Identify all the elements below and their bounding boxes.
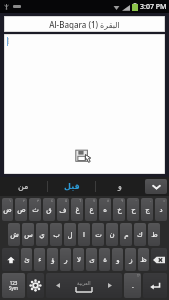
- button[interactable]: ٦: [71, 198, 83, 221]
- button[interactable]: =: [155, 198, 167, 221]
- button[interactable]: Enter: [143, 273, 167, 298]
- button[interactable]: Backspace: [151, 248, 167, 271]
- button[interactable]: !?: [124, 273, 141, 298]
- staticText: قيل: [64, 182, 80, 191]
- staticText: !?: [137, 273, 140, 278]
- staticText: -: [150, 198, 152, 203]
- button[interactable]: ٣: [29, 198, 41, 221]
- staticText: ة: [103, 256, 107, 264]
- button[interactable]: Al-Baqara (1) البقرة: [4, 16, 165, 32]
- staticText: 3:07 PM: [140, 2, 167, 12]
- staticText: ن: [109, 231, 115, 239]
- button[interactable]: لا: [73, 248, 84, 271]
- staticText: ع: [89, 206, 94, 214]
- staticText: ر: [64, 256, 68, 264]
- button[interactable]: ٤: [43, 198, 55, 221]
- staticText: لا: [77, 256, 81, 264]
- button[interactable]: ؤ: [47, 248, 58, 271]
- staticText: ض: [3, 206, 12, 214]
- staticText: ك: [137, 231, 143, 239]
- button[interactable]: و: [96, 177, 143, 196]
- button[interactable]: ى: [86, 248, 97, 271]
- button[interactable]: ٥: [57, 198, 69, 221]
- button[interactable]: -: [141, 198, 153, 221]
- staticText: ١: [9, 198, 12, 203]
- staticText: ل: [67, 231, 73, 239]
- button[interactable]: م: [120, 223, 132, 246]
- staticText: و: [116, 256, 120, 264]
- button[interactable]: ز: [125, 248, 136, 271]
- staticText: ٤: [51, 198, 54, 203]
- staticText: غ: [75, 206, 80, 214]
- button[interactable]: ي: [36, 223, 48, 246]
- staticText: ج: [145, 206, 150, 214]
- button[interactable]: ل: [64, 223, 76, 246]
- button[interactable]: ش: [8, 223, 20, 246]
- staticText: ى: [89, 256, 95, 264]
- button[interactable]: ك: [134, 223, 146, 246]
- staticText: Al-Baqara (1) البقرة: [49, 19, 120, 30]
- button[interactable]: ١: [2, 198, 13, 221]
- button[interactable]: ٩: [113, 198, 125, 221]
- button[interactable]: ب: [50, 223, 62, 246]
- button[interactable]: Save: [4, 34, 165, 174]
- staticText: ص: [17, 206, 26, 214]
- button[interactable]: ظ: [138, 248, 149, 271]
- button[interactable]: ت: [92, 223, 104, 246]
- button[interactable]: و: [112, 248, 123, 271]
- staticText: م: [124, 231, 129, 239]
- staticText: ا: [83, 231, 85, 239]
- staticText: د: [159, 206, 163, 214]
- staticText: ط: [151, 231, 158, 239]
- staticText: العربية: [77, 280, 91, 286]
- button[interactable]: Space: [46, 273, 122, 298]
- button[interactable]: ٢: [15, 198, 27, 221]
- button[interactable]: ء: [34, 248, 45, 271]
- staticText: ح: [131, 206, 136, 214]
- button[interactable]: ة: [99, 248, 110, 271]
- staticText: ث: [32, 206, 39, 214]
- staticText: ي: [39, 231, 45, 239]
- staticText: ق: [46, 206, 52, 214]
- button[interactable]: ن: [106, 223, 118, 246]
- button[interactable]: ا: [78, 223, 90, 246]
- staticText: ٩: [121, 198, 124, 203]
- staticText: ٥: [65, 198, 68, 203]
- staticText: ٢: [23, 198, 26, 203]
- button[interactable]: ر: [60, 248, 71, 271]
- button[interactable]: 123 Sym: [2, 273, 25, 298]
- button[interactable]: Save: [75, 148, 95, 166]
- staticText: ٨: [107, 198, 110, 203]
- staticText: ئ: [24, 256, 30, 264]
- button[interactable]: قيل: [48, 177, 95, 196]
- staticText: ش: [10, 231, 19, 239]
- staticText: ٣: [37, 198, 40, 203]
- button[interactable]: Expand suggestions: [145, 179, 167, 194]
- staticText: ت: [95, 231, 102, 239]
- staticText: ٧: [93, 198, 96, 203]
- staticText: =: [163, 198, 166, 203]
- staticText: ٠: [135, 198, 138, 203]
- button[interactable]: س: [22, 223, 34, 246]
- staticText: و: [118, 182, 122, 191]
- button[interactable]: ٠: [127, 198, 139, 221]
- button[interactable]: من: [0, 177, 47, 196]
- staticText: ٦: [79, 198, 82, 203]
- staticText: خ: [117, 206, 122, 214]
- button[interactable]: ٧: [85, 198, 97, 221]
- staticText: من: [18, 182, 29, 191]
- button[interactable]: Keyboard settings: [27, 273, 44, 298]
- staticText: س: [24, 231, 33, 239]
- staticText: ظ: [140, 256, 147, 264]
- staticText: ء: [38, 256, 42, 264]
- button[interactable]: ٨: [99, 198, 111, 221]
- staticText: 123 Sym: [9, 280, 18, 291]
- button[interactable]: Shift: [2, 248, 19, 271]
- button[interactable]: ئ: [21, 248, 32, 271]
- staticText: ؤ: [51, 256, 55, 264]
- staticText: ب: [53, 231, 60, 239]
- button[interactable]: ط: [148, 223, 160, 246]
- staticText: .: [132, 281, 134, 291]
- staticText: ه: [103, 206, 107, 214]
- staticText: ف: [59, 206, 67, 214]
